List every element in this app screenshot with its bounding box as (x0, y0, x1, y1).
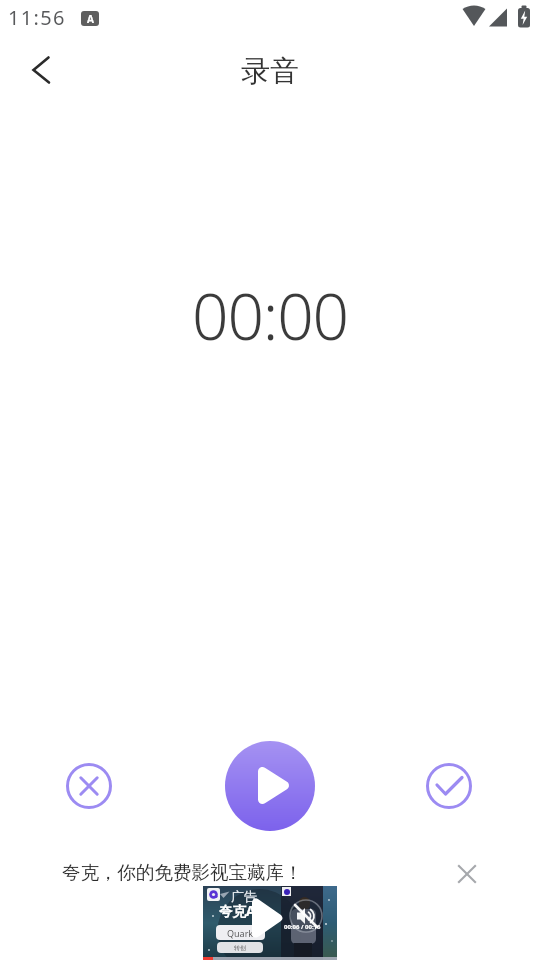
button[interactable] (61, 758, 117, 814)
button[interactable]: 广告 (203, 886, 337, 960)
button[interactable] (452, 859, 482, 889)
staticText: Quark (227, 927, 254, 939)
staticText: 转创 (234, 944, 246, 952)
staticText: 00:06 / 00:16 (284, 923, 321, 931)
button[interactable] (225, 741, 315, 831)
staticText: A (87, 12, 94, 26)
button[interactable] (421, 758, 477, 814)
staticText: 夸克AP (219, 902, 264, 920)
staticText: 00:00 (0, 272, 540, 359)
staticText: 11:56 (8, 4, 66, 31)
staticText: 广告 (231, 888, 257, 904)
button[interactable]: 夸克，你的免费影视宝藏库！ (62, 861, 303, 884)
button[interactable] (16, 48, 64, 92)
staticText: 录音 (0, 53, 540, 90)
